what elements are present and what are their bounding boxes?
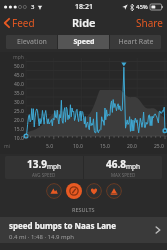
staticText: 20.0 <box>14 117 24 124</box>
staticText: 50.0 <box>14 63 24 70</box>
button[interactable]: Heart rate <box>86 183 102 199</box>
staticText: 30.0 <box>14 99 24 106</box>
staticText: 3 <box>31 3 35 11</box>
staticText: AVG SPEED <box>32 172 56 178</box>
staticText: Speed <box>73 37 95 47</box>
staticText: mph <box>47 162 62 171</box>
staticText: 25.0 <box>154 143 164 150</box>
staticText: 18:21 <box>75 2 93 12</box>
button[interactable]: Share <box>130 13 167 32</box>
button[interactable]: speed bumps to Naas Lane <box>0 217 167 243</box>
staticText: MAX SPEED <box>111 172 136 178</box>
staticText: 5.0 <box>46 143 54 150</box>
button[interactable]: Elevation <box>6 35 57 49</box>
staticText: speed bumps to Naas Lane <box>9 220 116 231</box>
button[interactable]: Power <box>106 183 122 199</box>
staticText: mi <box>4 143 10 150</box>
button[interactable]: Feed <box>0 13 41 32</box>
staticText: Share <box>136 16 163 29</box>
staticText: Ride <box>72 15 96 30</box>
button[interactable]: Speed <box>58 35 109 49</box>
staticText: 40.0 <box>14 81 24 88</box>
staticText: RESULTS <box>72 206 95 213</box>
button[interactable]: Elevation <box>46 183 62 199</box>
staticText: Heart Rate <box>118 37 154 47</box>
staticText: 10.0 <box>73 143 83 150</box>
staticText: mph <box>126 162 141 171</box>
staticText: 45.0 <box>14 72 24 79</box>
staticText: 45% <box>136 3 148 11</box>
staticText: Feed <box>12 16 35 29</box>
staticText: 13.9 <box>27 157 47 171</box>
button[interactable]: 13.9 <box>5 156 83 179</box>
button[interactable]: 46.8 <box>84 156 162 179</box>
staticText: 20.0 <box>127 143 137 150</box>
button[interactable]: Speed <box>66 183 82 199</box>
staticText: 15.0 <box>14 126 24 133</box>
staticText: Elevation <box>17 37 47 47</box>
staticText: 0.4 mi · 1:48 · 14.9 mph <box>9 233 75 241</box>
staticText: 46.8 <box>106 157 126 171</box>
staticText: 15.0 <box>100 143 110 150</box>
staticText: 10.0 <box>14 135 24 142</box>
staticText: mph <box>13 54 24 61</box>
staticText: 35.0 <box>14 90 24 97</box>
button[interactable]: Heart Rate <box>110 35 161 49</box>
staticText: 25.0 <box>14 108 24 115</box>
